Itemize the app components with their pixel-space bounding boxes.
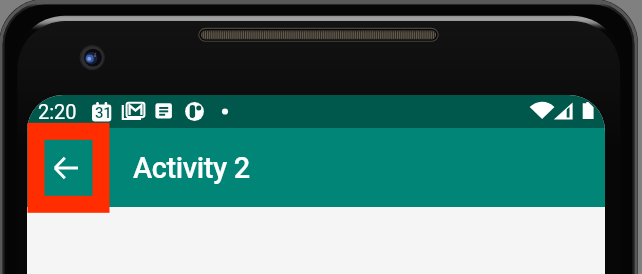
staticText: 31: [95, 104, 112, 122]
staticText: Activity 2: [133, 151, 250, 185]
staticText: 2:20: [38, 100, 77, 123]
button[interactable]: Navigate up: [41, 138, 91, 197]
